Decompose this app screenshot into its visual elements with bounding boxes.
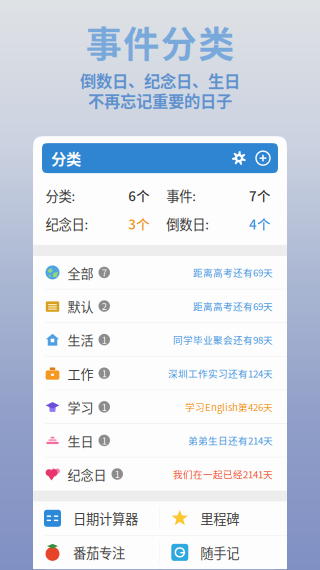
staticText: 6个 — [128, 186, 149, 205]
staticText: 倒数日: — [166, 214, 209, 233]
staticText: 番茄专注 — [73, 543, 125, 562]
button[interactable]: 里程碑 — [160, 501, 287, 535]
staticText: 倒数日、纪念日、生日 — [80, 68, 240, 92]
staticText: 2 — [102, 299, 107, 313]
staticText: 分类 — [51, 147, 81, 169]
staticText: 日期计算器 — [73, 509, 138, 528]
staticText: 7个 — [249, 186, 270, 205]
staticText: 生活 — [67, 330, 93, 349]
staticText: 弟弟生日还有214天 — [188, 433, 273, 447]
staticText: 学习 — [67, 397, 93, 416]
staticText: 工作 — [67, 364, 93, 383]
staticText: 随手记 — [200, 543, 239, 562]
staticText: 事件: — [166, 186, 196, 205]
staticText: 里程碑 — [200, 509, 239, 528]
staticText: 距离高考还有69天 — [193, 265, 273, 279]
button[interactable]: 纪念日 — [33, 457, 287, 490]
staticText: 纪念日 — [67, 465, 106, 483]
button[interactable]: 生活 — [33, 323, 287, 356]
staticText: 事件分类 — [86, 16, 234, 68]
staticText: 4个 — [249, 214, 270, 233]
staticText: 深圳工作实习还有124天 — [168, 366, 273, 380]
button[interactable]: 番茄专注 — [33, 536, 160, 569]
staticText: 我们在一起已经2141天 — [173, 467, 273, 481]
button[interactable]: 全部 — [33, 256, 287, 289]
button[interactable]: 默认 — [33, 289, 287, 322]
button[interactable]: 日期计算器 — [33, 501, 160, 535]
staticText: 3个 — [128, 214, 149, 233]
staticText: 1 — [102, 434, 107, 447]
staticText: 距离高考还有69天 — [193, 299, 273, 313]
staticText: 1 — [102, 366, 107, 380]
button[interactable]: 设置 — [227, 151, 251, 165]
staticText: 纪念日: — [45, 214, 88, 233]
staticText: 全部 — [67, 263, 93, 282]
staticText: 不再忘记重要的日子 — [88, 88, 232, 112]
staticText: 生日 — [67, 431, 93, 450]
button[interactable]: 生日 — [33, 424, 287, 457]
button[interactable]: 添加分类 — [251, 151, 275, 165]
staticText: 分类: — [45, 186, 75, 205]
staticText: 学习English第426天 — [185, 400, 273, 414]
staticText: 1 — [102, 333, 107, 346]
staticText: 1 — [102, 400, 107, 414]
button[interactable]: 学习 — [33, 390, 287, 423]
button[interactable]: 工作 — [33, 357, 287, 390]
staticText: 默认 — [67, 297, 93, 315]
staticText: 1 — [115, 467, 120, 481]
staticText: 同学毕业聚会还有98天 — [173, 333, 273, 347]
button[interactable]: 随手记 — [160, 536, 287, 569]
staticText: 7 — [102, 266, 107, 279]
